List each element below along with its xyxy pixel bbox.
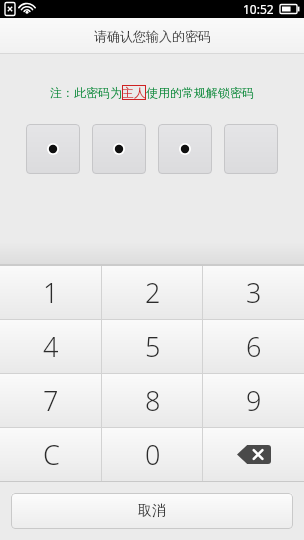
button[interactable]: 1 <box>0 266 102 319</box>
staticText: 10:52 <box>243 1 274 17</box>
button[interactable] <box>92 124 146 174</box>
button[interactable]: 3 <box>203 266 304 319</box>
button[interactable]: 7 <box>0 374 102 427</box>
staticText: 6 <box>246 328 262 365</box>
staticText: OPPO.COM <box>146 499 283 534</box>
button[interactable]: 9 <box>203 374 304 427</box>
button[interactable]: 4 <box>0 320 102 373</box>
button[interactable]: 2 <box>102 266 203 319</box>
staticText: 3 <box>246 274 262 311</box>
button[interactable]: 取消 <box>11 493 293 529</box>
staticText: 主人 <box>122 85 146 100</box>
button[interactable]: C <box>0 428 102 481</box>
staticText: 2 <box>145 274 161 311</box>
staticText: 8 <box>145 382 161 419</box>
button[interactable] <box>26 124 80 174</box>
button[interactable] <box>224 124 278 174</box>
staticText: 9 <box>246 382 262 419</box>
staticText: 使用的常规解锁密码 <box>146 85 254 100</box>
staticText: 0 <box>145 436 161 473</box>
button[interactable]: 5 <box>102 320 203 373</box>
staticText: 4 <box>43 328 59 365</box>
staticText: 请确认您输入的密码 <box>94 28 211 44</box>
staticText: 1 <box>43 274 59 311</box>
staticText: 5 <box>145 328 161 365</box>
staticText: 7 <box>43 382 59 419</box>
button[interactable]: 8 <box>102 374 203 427</box>
button[interactable]: Delete <box>203 428 304 481</box>
staticText: 注：此密码为 <box>50 85 122 100</box>
button[interactable]: 6 <box>203 320 304 373</box>
button[interactable] <box>158 124 212 174</box>
button[interactable]: 0 <box>102 428 203 481</box>
staticText: 取消 <box>138 502 166 520</box>
staticText: C <box>43 436 60 473</box>
